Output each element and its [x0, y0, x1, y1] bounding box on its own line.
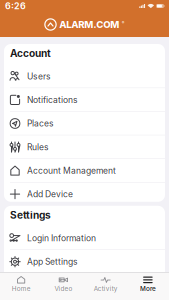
button[interactable]: Notifications [4, 88, 165, 112]
button[interactable]: Login Information [4, 226, 165, 250]
staticText: Add Device [27, 189, 73, 199]
button[interactable]: Account Management [4, 159, 165, 182]
button[interactable]: Video [42, 272, 84, 300]
button[interactable]: App Settings [4, 250, 165, 273]
button[interactable]: Places [4, 112, 165, 135]
staticText: ALARM.COM [59, 19, 119, 30]
staticText: Activity [94, 285, 118, 293]
staticText: ® [122, 20, 125, 25]
staticText: App Settings [27, 256, 78, 267]
staticText: Video [54, 285, 72, 293]
staticText: Account [10, 47, 51, 59]
staticText: 6:26 [5, 1, 26, 11]
button[interactable]: Home [0, 272, 42, 300]
staticText: Settings [10, 209, 51, 221]
staticText: Notifications [27, 95, 78, 105]
staticText: More [140, 285, 156, 293]
button[interactable]: Add Device [4, 182, 165, 202]
staticText: Places [27, 118, 54, 129]
staticText: Users [27, 71, 51, 81]
button[interactable]: More [127, 272, 169, 300]
staticText: Rules [27, 142, 49, 152]
button[interactable]: Rules [4, 135, 165, 159]
staticText: Login Information [27, 233, 96, 243]
staticText: Home [12, 285, 31, 293]
button[interactable]: Activity [84, 272, 127, 300]
button[interactable]: Users [4, 64, 165, 88]
staticText: Account Management [27, 165, 116, 176]
